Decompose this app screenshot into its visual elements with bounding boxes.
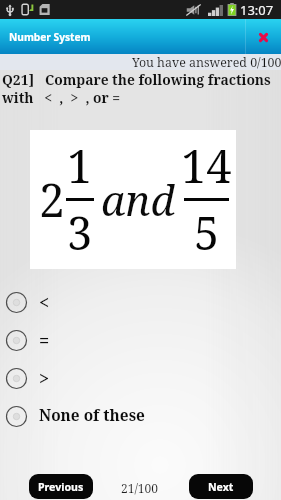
- staticText: and: [101, 171, 175, 228]
- staticText: 21/100: [121, 480, 158, 496]
- staticText: Previous: [38, 480, 84, 494]
- staticText: 1: [67, 135, 93, 196]
- staticText: 13:07: [240, 1, 274, 19]
- button[interactable]: Next: [189, 474, 253, 499]
- button[interactable]: Close: [245, 19, 281, 54]
- staticText: >: [39, 366, 50, 391]
- button[interactable]: None of these: [0, 397, 281, 435]
- staticText: Q21] Compare the following fractions wit…: [2, 70, 279, 107]
- button[interactable]: Previous: [29, 474, 93, 499]
- staticText: Next: [208, 480, 234, 494]
- button[interactable]: =: [0, 321, 281, 359]
- staticText: =: [39, 328, 50, 353]
- staticText: You have answered 0/100: [132, 54, 281, 70]
- staticText: 5: [194, 202, 220, 263]
- button[interactable]: >: [0, 359, 281, 397]
- staticText: <: [39, 290, 50, 315]
- staticText: 2: [39, 168, 65, 231]
- staticText: 3: [67, 202, 93, 263]
- staticText: Number System: [9, 30, 91, 44]
- button[interactable]: <: [0, 283, 281, 321]
- staticText: None of these: [39, 405, 145, 426]
- staticText: 14: [181, 135, 232, 196]
